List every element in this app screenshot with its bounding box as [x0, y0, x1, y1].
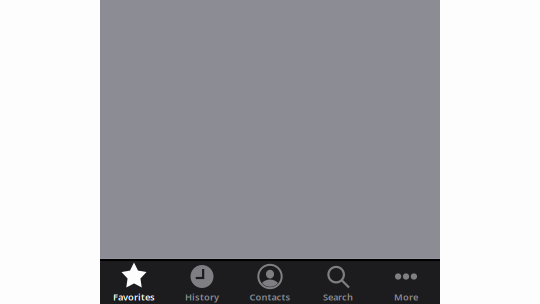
staticText: History [185, 291, 219, 303]
staticText: Search [323, 291, 353, 303]
staticText: Favorites [113, 291, 155, 303]
button[interactable]: More [372, 261, 440, 304]
button[interactable]: Search [304, 261, 372, 304]
button[interactable]: History [168, 261, 236, 304]
button[interactable]: Favorites [100, 261, 168, 304]
button[interactable]: Contacts [236, 261, 304, 304]
staticText: Contacts [249, 291, 290, 303]
staticText: More [394, 291, 418, 303]
